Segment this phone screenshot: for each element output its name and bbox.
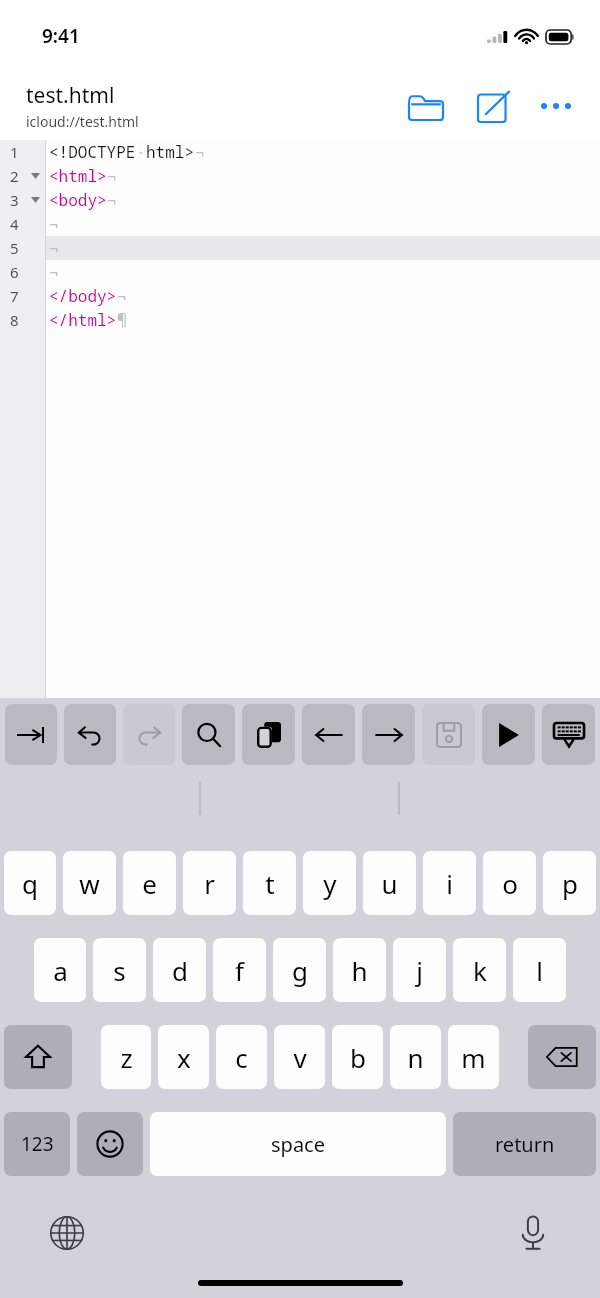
- staticText: f: [235, 953, 244, 988]
- staticText: j: [416, 953, 423, 988]
- staticText: return: [495, 1131, 555, 1158]
- button[interactable]: Dictation: [510, 1210, 556, 1256]
- button[interactable]: Indent: [5, 704, 57, 765]
- button[interactable]: Move right: [362, 704, 415, 765]
- staticText: 7: [10, 286, 19, 306]
- button[interactable]: Change keyboard: [44, 1210, 90, 1256]
- button[interactable]: f: [213, 938, 266, 1002]
- staticText: ¬: [195, 141, 205, 163]
- button[interactable]: z: [101, 1025, 151, 1089]
- staticText: z: [120, 1040, 133, 1075]
- staticText: t: [265, 866, 275, 901]
- staticText: ¬: [49, 213, 59, 235]
- button[interactable]: More options: [534, 84, 578, 128]
- staticText: ¬: [107, 189, 117, 211]
- staticText: html>: [146, 141, 195, 163]
- button[interactable]: m: [448, 1025, 499, 1089]
- button[interactable]: return: [453, 1112, 596, 1176]
- staticText: u: [381, 866, 398, 901]
- staticText: m: [461, 1040, 486, 1075]
- staticText: s: [113, 953, 126, 988]
- button[interactable]: e: [123, 851, 176, 915]
- staticText: ·: [136, 141, 146, 163]
- button[interactable]: Redo: [123, 704, 175, 765]
- staticText: <!DOCTYPE: [49, 141, 136, 163]
- button[interactable]: Run: [482, 704, 535, 765]
- staticText: 1: [10, 142, 19, 162]
- staticText: i: [446, 866, 453, 901]
- staticText: c: [235, 1040, 248, 1075]
- button[interactable]: Save: [422, 704, 475, 765]
- button[interactable]: h: [333, 938, 386, 1002]
- staticText: 6: [10, 262, 19, 282]
- staticText: h: [351, 953, 368, 988]
- staticText: 4: [10, 214, 19, 234]
- button[interactable]: u: [363, 851, 416, 915]
- staticText: 5: [10, 238, 19, 258]
- button[interactable]: a: [34, 938, 86, 1002]
- staticText: p: [562, 866, 578, 901]
- button[interactable]: o: [483, 851, 536, 915]
- staticText: test.html: [26, 81, 115, 110]
- button[interactable]: y: [303, 851, 356, 915]
- button[interactable]: g: [273, 938, 326, 1002]
- button[interactable]: Shift: [4, 1025, 72, 1089]
- staticText: r: [204, 866, 215, 901]
- button[interactable]: s: [93, 938, 146, 1002]
- button[interactable]: Search: [182, 704, 235, 765]
- button[interactable]: i: [423, 851, 476, 915]
- staticText: l: [536, 953, 543, 988]
- staticText: e: [142, 866, 157, 901]
- button[interactable]: 123: [4, 1112, 70, 1176]
- button[interactable]: Edit: [470, 82, 518, 130]
- staticText: k: [473, 953, 487, 988]
- button[interactable]: d: [153, 938, 206, 1002]
- staticText: icloud://test.html: [26, 112, 139, 131]
- button[interactable]: Backspace: [528, 1025, 596, 1089]
- staticText: 3: [10, 190, 19, 210]
- button[interactable]: c: [216, 1025, 267, 1089]
- staticText: q: [22, 866, 38, 901]
- staticText: ¬: [107, 165, 117, 187]
- button[interactable]: v: [274, 1025, 325, 1089]
- button[interactable]: x: [158, 1025, 209, 1089]
- staticText: ¬: [49, 261, 59, 283]
- staticText: a: [53, 953, 68, 988]
- staticText: </body>: [49, 285, 117, 307]
- staticText: 9:41: [42, 23, 80, 49]
- button[interactable]: Move left: [302, 704, 355, 765]
- staticText: d: [172, 953, 188, 988]
- staticText: v: [293, 1040, 307, 1075]
- button[interactable]: Undo: [64, 704, 116, 765]
- button[interactable]: r: [183, 851, 236, 915]
- button[interactable]: b: [332, 1025, 383, 1089]
- staticText: o: [502, 866, 518, 901]
- staticText: ¬: [49, 237, 59, 259]
- staticText: space: [271, 1131, 325, 1158]
- button[interactable]: j: [393, 938, 446, 1002]
- button[interactable]: n: [390, 1025, 441, 1089]
- button[interactable]: Paste: [242, 704, 295, 765]
- button[interactable]: Emoji: [77, 1112, 143, 1176]
- button[interactable]: Hide keyboard: [542, 704, 595, 765]
- staticText: g: [292, 953, 308, 988]
- button[interactable]: t: [243, 851, 296, 915]
- staticText: <html>: [49, 165, 107, 187]
- staticText: 123: [21, 1131, 54, 1157]
- staticText: y: [323, 866, 337, 901]
- staticText: ¬: [117, 285, 127, 307]
- staticText: 2: [10, 166, 19, 186]
- button[interactable]: Open folder: [402, 82, 450, 130]
- button[interactable]: space: [150, 1112, 446, 1176]
- staticText: b: [350, 1040, 366, 1075]
- staticText: x: [177, 1040, 191, 1075]
- staticText: </html>: [49, 309, 117, 331]
- button[interactable]: p: [543, 851, 596, 915]
- staticText: <body>: [49, 189, 107, 211]
- button[interactable]: k: [453, 938, 506, 1002]
- staticText: w: [79, 866, 100, 901]
- button[interactable]: w: [63, 851, 116, 915]
- button[interactable]: l: [513, 938, 566, 1002]
- button[interactable]: q: [4, 851, 56, 915]
- staticText: ¶: [117, 309, 127, 331]
